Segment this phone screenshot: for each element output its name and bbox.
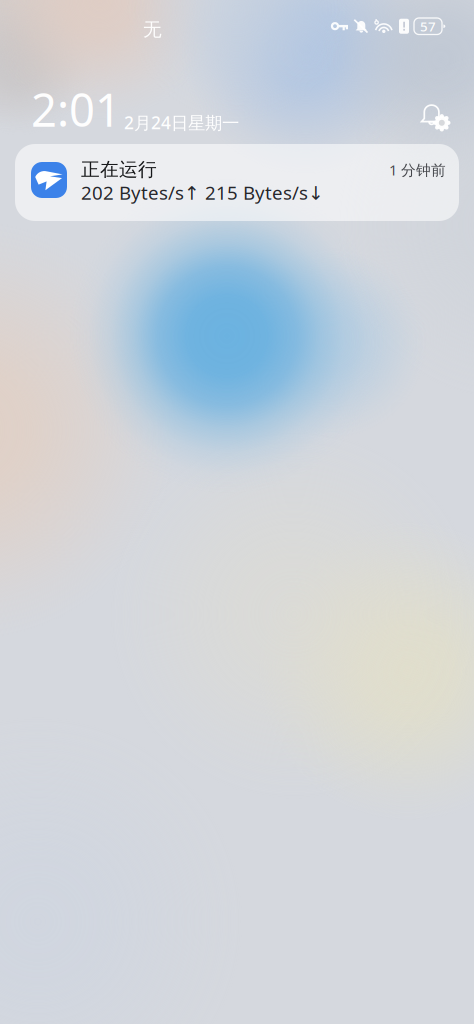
staticText: 57	[420, 17, 436, 35]
staticText: 2月24日星期一	[124, 111, 239, 134]
staticText: 202 Bytes/s↑ 215 Bytes/s↓	[81, 180, 324, 205]
staticText: 1 分钟前	[389, 160, 446, 179]
button[interactable]: Notification settings	[412, 94, 456, 138]
staticText: 2:01	[31, 79, 121, 139]
button[interactable]: 正在运行	[15, 144, 459, 221]
staticText: 无	[143, 18, 162, 41]
staticText: 正在运行	[81, 158, 157, 181]
